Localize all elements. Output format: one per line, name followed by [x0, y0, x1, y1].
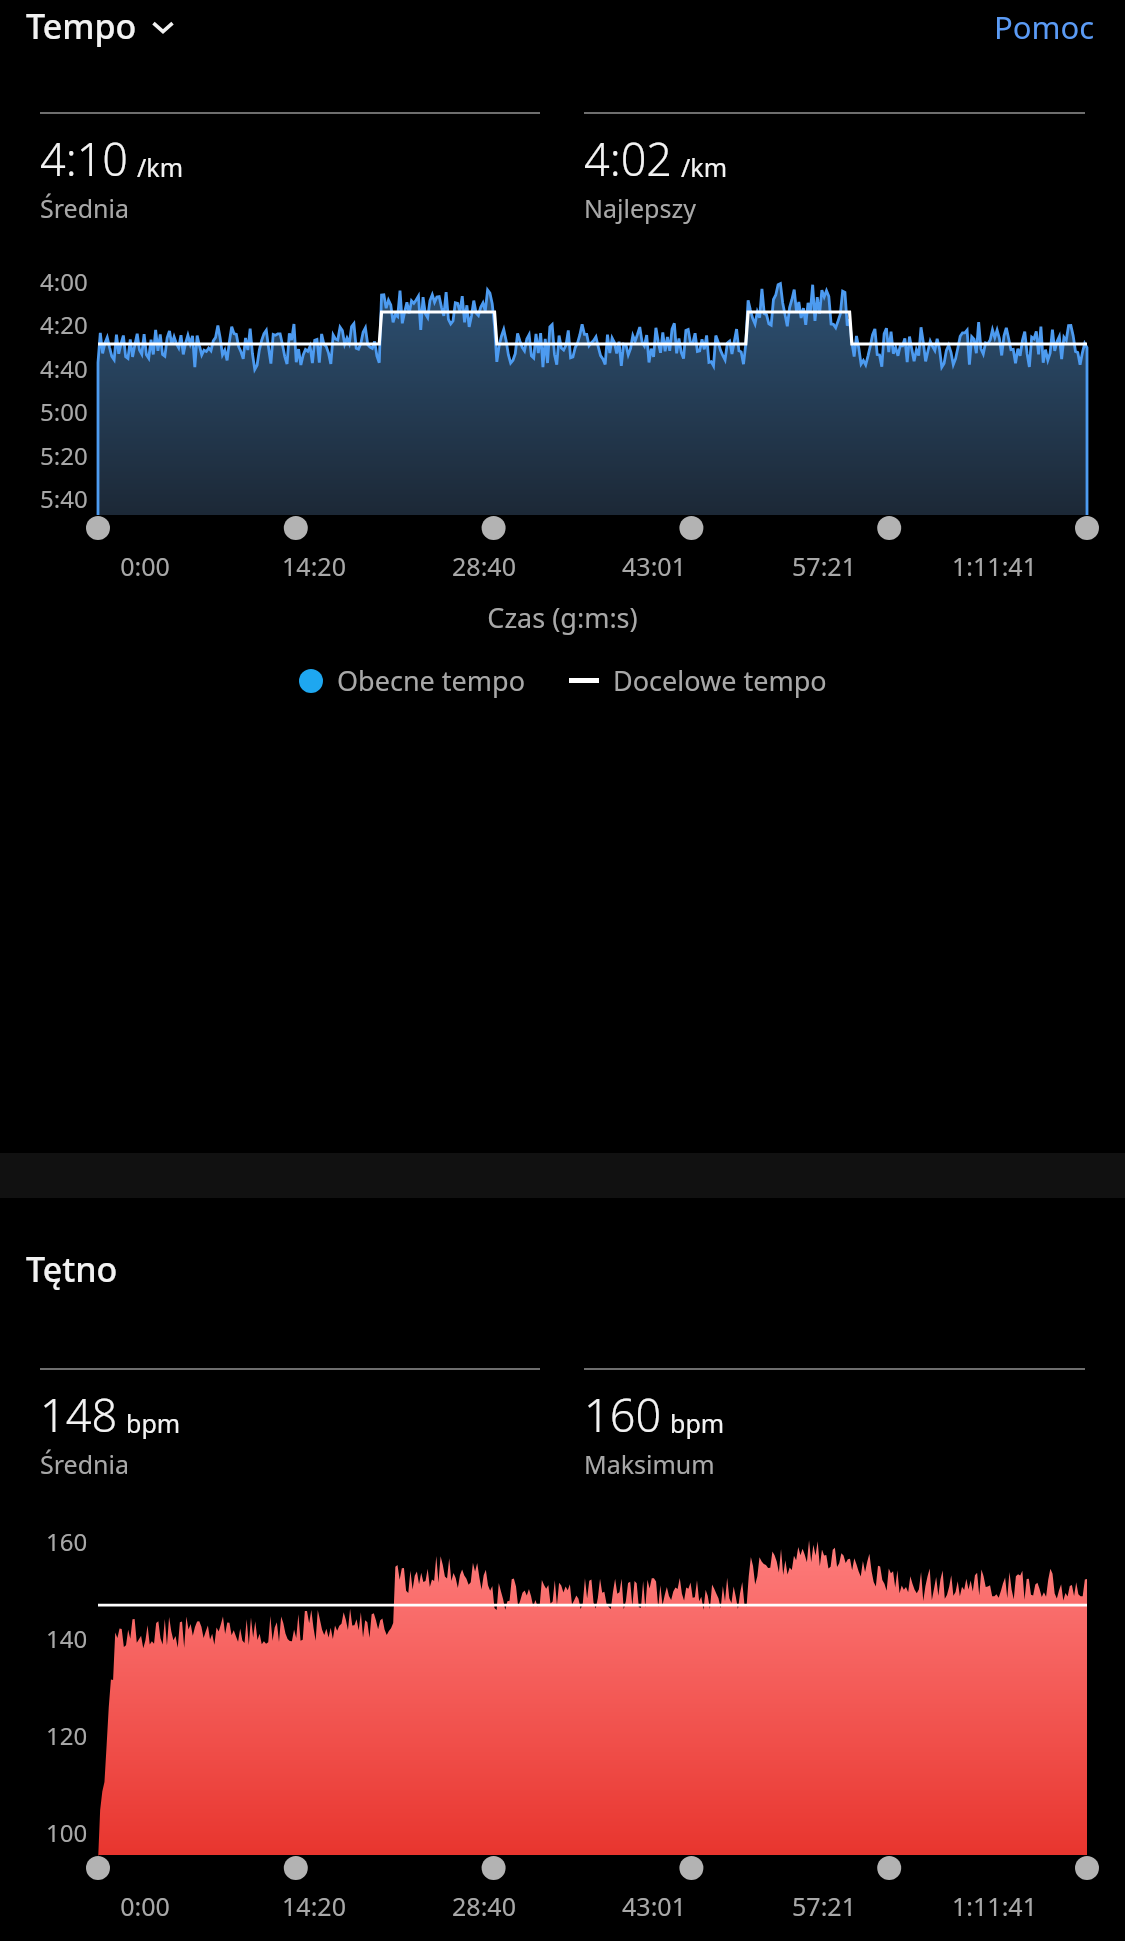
staticText: Tętno [26, 1246, 118, 1292]
staticText: bpm [670, 1406, 725, 1440]
staticText: 140 [46, 1622, 88, 1655]
staticText: 14:20 [282, 549, 346, 583]
button[interactable]: Tempo [26, 1, 183, 51]
staticText: Tempo [26, 3, 137, 49]
staticText: 4:20 [40, 308, 88, 341]
staticText: 57:21 [792, 549, 856, 583]
staticText: Pomoc [994, 6, 1095, 46]
staticText: Maksimum [584, 1447, 715, 1481]
staticText: 148 [40, 1384, 118, 1445]
staticText: 100 [46, 1816, 88, 1849]
staticText: bpm [126, 1406, 181, 1440]
staticText: Czas (g:m:s) [0, 599, 1125, 636]
staticText: 14:20 [282, 1889, 346, 1923]
button[interactable]: Pomoc [990, 0, 1099, 52]
staticText: 1:11:41 [952, 549, 1037, 583]
staticText: 160 [46, 1525, 88, 1558]
staticText: 4:00 [40, 265, 88, 298]
staticText: 43:01 [622, 549, 686, 583]
staticText: 5:40 [40, 482, 88, 515]
staticText: Średnia [40, 1447, 129, 1481]
staticText: 4:02 [584, 128, 673, 189]
staticText: 160 [584, 1384, 662, 1445]
staticText: 43:01 [622, 1889, 686, 1923]
staticText: 1:11:41 [952, 1889, 1037, 1923]
staticText: /km [137, 150, 184, 184]
staticText: /km [681, 150, 728, 184]
staticText: 28:40 [452, 549, 516, 583]
staticText: 28:40 [452, 1889, 516, 1923]
staticText: 4:40 [40, 352, 88, 385]
staticText: 120 [46, 1719, 88, 1752]
staticText: 5:00 [40, 395, 88, 428]
staticText: Średnia [40, 191, 129, 225]
staticText: 4:10 [40, 128, 129, 189]
other: Change metric [149, 12, 177, 40]
staticText: 57:21 [792, 1889, 856, 1923]
staticText: Obecne tempo [337, 662, 525, 699]
staticText: 0:00 [120, 1889, 170, 1923]
staticText: 0:00 [120, 549, 170, 583]
staticText: 5:20 [40, 439, 88, 472]
staticText: Najlepszy [584, 191, 696, 225]
staticText: Docelowe tempo [613, 662, 827, 699]
